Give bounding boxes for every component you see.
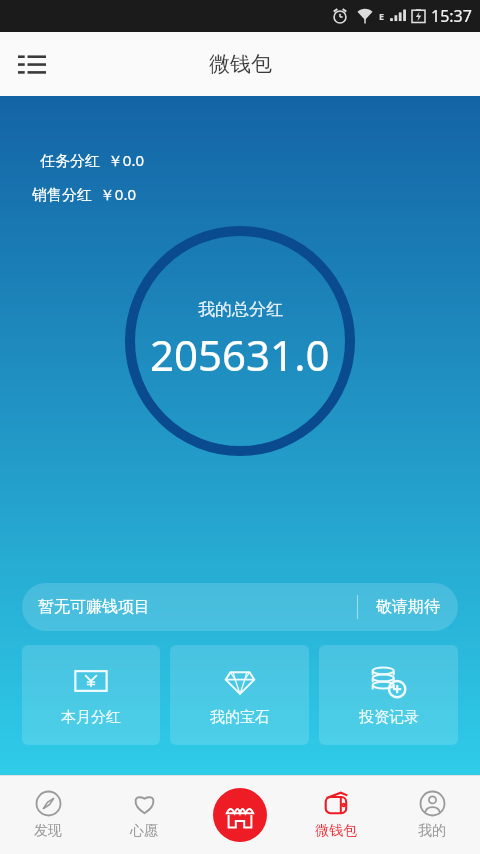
button[interactable]: 发现 [0, 775, 96, 854]
staticText: 15:37 [431, 5, 472, 27]
staticText: 敬请期待 [376, 597, 440, 617]
button[interactable]: 我的 [384, 775, 480, 854]
staticText: 发现 [34, 822, 62, 840]
staticText: 投资记录 [359, 708, 419, 727]
staticText: 我的总分红 [198, 299, 283, 320]
button[interactable]: 投资记录 [319, 645, 458, 745]
button[interactable]: Shop [213, 788, 267, 842]
button[interactable]: 微钱包 [288, 775, 384, 854]
staticText: 本月分红 [61, 708, 121, 727]
staticText: 暂无可赚钱项目 [38, 597, 357, 617]
button[interactable]: 本月分红 [22, 645, 160, 745]
button[interactable]: 暂无可赚钱项目 [22, 583, 458, 631]
staticText: 我的宝石 [210, 708, 270, 727]
staticText: 205631.0 [150, 326, 330, 383]
button[interactable]: 我的宝石 [170, 645, 309, 745]
staticText: 微钱包 [209, 51, 272, 77]
staticText: 我的 [418, 822, 446, 840]
staticText: E [379, 10, 385, 22]
staticText: 微钱包 [315, 822, 357, 840]
button[interactable]: 心愿 [96, 775, 192, 854]
staticText: 销售分红 ￥0.0 [32, 184, 136, 204]
staticText: 心愿 [130, 822, 158, 840]
button[interactable]: Menu [8, 40, 56, 88]
staticText: 任务分红 ￥0.0 [40, 150, 144, 170]
